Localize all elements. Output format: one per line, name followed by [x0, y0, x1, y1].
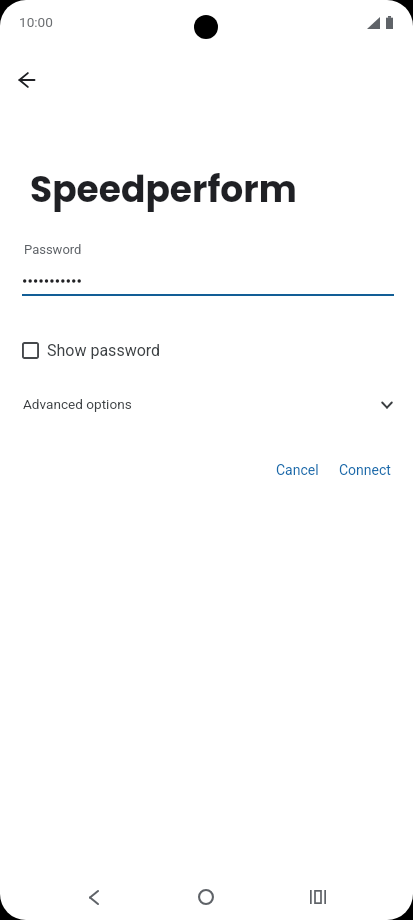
- button[interactable]: Show password: [16, 334, 168, 368]
- button[interactable]: Back: [70, 873, 118, 920]
- button[interactable]: Recent apps: [294, 873, 342, 920]
- staticText: Connect: [339, 462, 391, 478]
- button[interactable]: Navigate up: [7, 60, 47, 100]
- other: Password entered: [23, 274, 85, 288]
- button[interactable]: Home: [182, 873, 230, 920]
- button[interactable]: Connect: [330, 454, 400, 486]
- staticText: Advanced options: [23, 396, 132, 412]
- staticText: Show password: [47, 341, 161, 360]
- button[interactable]: Advanced options: [16, 387, 397, 421]
- staticText: Speedperform: [30, 164, 297, 214]
- other: Mobile signal: [367, 17, 380, 29]
- button[interactable]: Cancel: [266, 454, 329, 486]
- staticText: Password: [24, 242, 82, 257]
- staticText: Cancel: [276, 462, 319, 478]
- other: Battery: [386, 16, 393, 29]
- staticText: 10:00: [19, 14, 53, 30]
